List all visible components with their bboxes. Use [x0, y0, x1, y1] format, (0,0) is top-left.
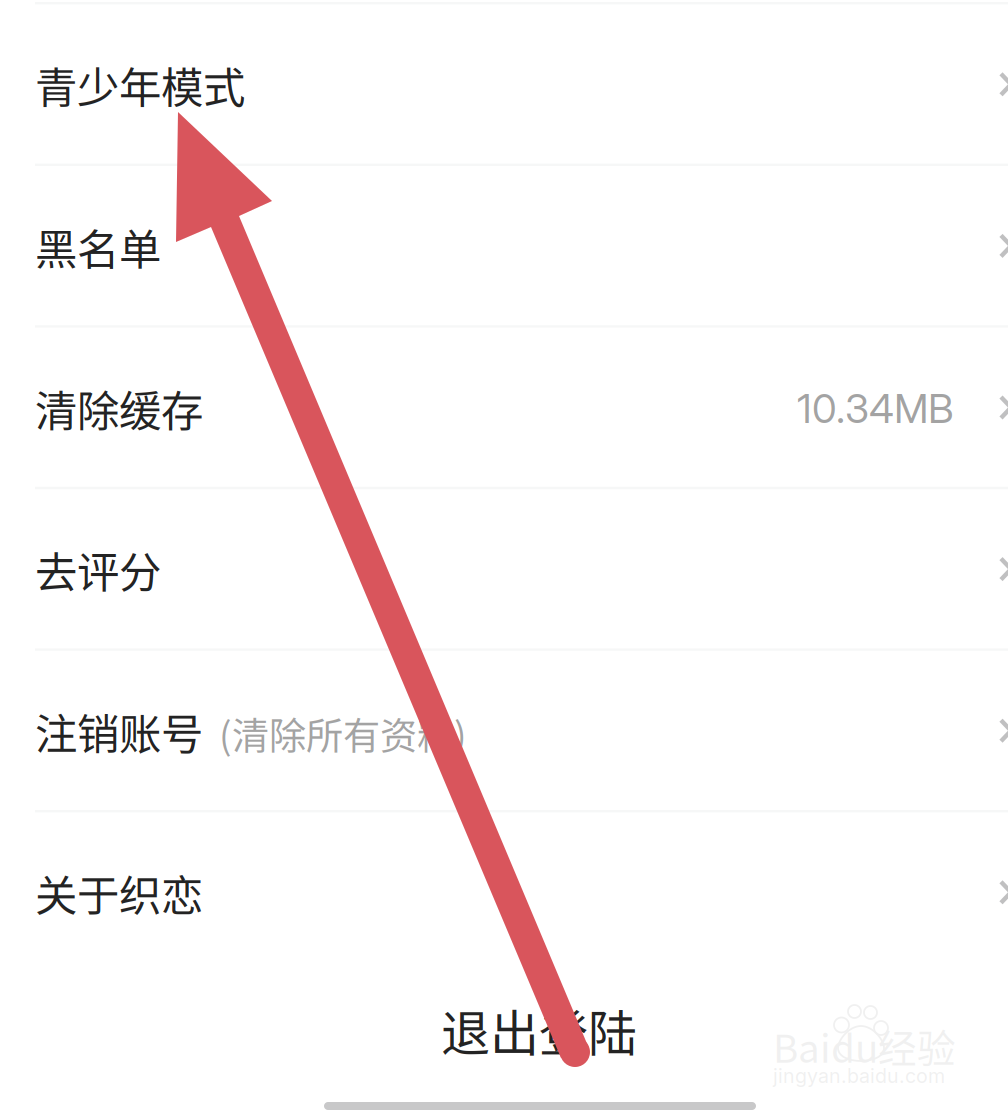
staticText: 清除缓存	[35, 377, 203, 439]
staticText: jingyan.baidu.com	[773, 1064, 945, 1088]
staticText: 关于织恋	[35, 862, 203, 923]
button[interactable]: 去评分	[0, 487, 1008, 648]
button[interactable]: 退出登陆	[329, 985, 749, 1075]
staticText: 注销账号	[35, 700, 203, 762]
staticText: 黑名单	[35, 216, 161, 277]
staticText: 10.34MB	[797, 384, 954, 433]
button[interactable]: 黑名单	[0, 164, 1008, 325]
staticText: 去评分	[35, 539, 161, 600]
staticText: (清除所有资料)	[203, 706, 467, 760]
button[interactable]: 注销账号	[0, 648, 1008, 810]
button[interactable]: 关于织恋	[0, 810, 1008, 972]
button[interactable]: 青少年模式	[0, 2, 1008, 164]
staticText: Baidu经验	[773, 1018, 956, 1074]
button[interactable]: 清除缓存	[0, 325, 1008, 487]
staticText: 青少年模式	[35, 54, 245, 115]
staticText: 退出登陆	[441, 994, 637, 1065]
